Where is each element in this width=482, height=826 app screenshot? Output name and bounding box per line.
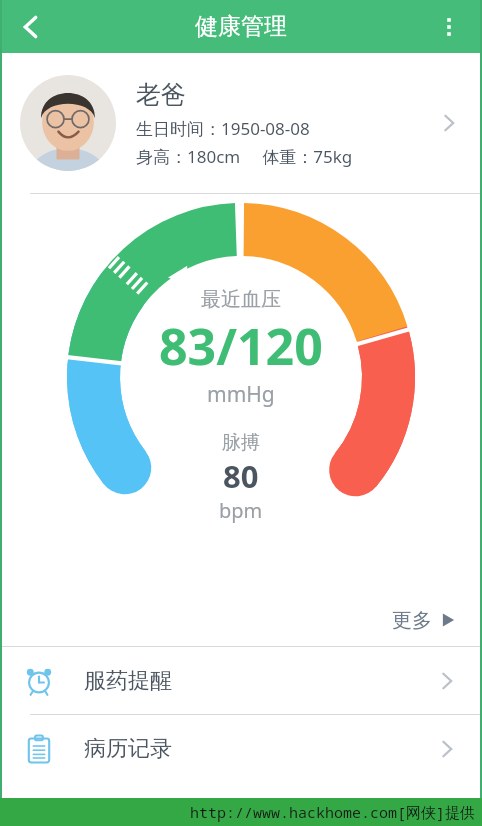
staticText: 服药提醒 (84, 667, 172, 695)
button[interactable]: 更多 (0, 594, 482, 646)
staticText: 80 (223, 455, 259, 497)
staticText: http://www.hackhome.com[网侠]提供 (190, 802, 476, 822)
staticText: 83/120 (159, 312, 323, 380)
staticText: mmHg (207, 380, 275, 409)
button[interactable]: Back (6, 2, 56, 52)
staticText: 脉搏 (222, 431, 260, 455)
staticText: 健康管理 (195, 12, 287, 41)
staticText: 最近血压 (201, 287, 281, 312)
button[interactable]: Medication reminder (0, 647, 482, 714)
staticText: 更多 (392, 608, 432, 633)
other: Medical records (22, 732, 56, 766)
staticText: bpm (219, 497, 263, 524)
other: Medication reminder (22, 664, 56, 698)
button[interactable]: 老爸 (0, 53, 482, 193)
staticText: 生日时间：1950-08-08 (136, 117, 310, 140)
staticText: 病历记录 (84, 735, 172, 763)
staticText: 身高：180cm 体重：75kg (136, 145, 353, 168)
button[interactable]: Medical records (0, 715, 482, 782)
button[interactable]: More options (424, 2, 474, 52)
staticText: 老爸 (136, 79, 186, 110)
